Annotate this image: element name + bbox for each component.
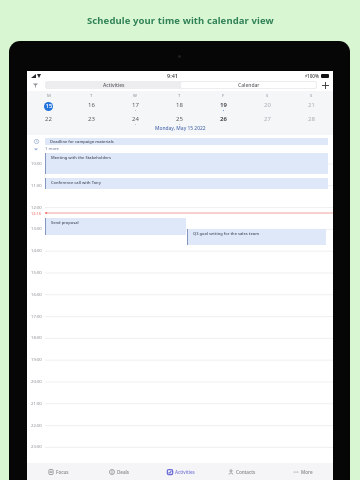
button[interactable]: 1 more (27, 146, 333, 152)
staticText: 13:00 (31, 226, 42, 232)
staticText: F (222, 93, 225, 98)
staticText: T (178, 93, 181, 98)
button[interactable]: 21 (289, 100, 333, 112)
staticText: 16 (88, 101, 95, 109)
button[interactable]: 22 (27, 114, 70, 126)
button[interactable]: Conference call with Tony (45, 178, 328, 189)
staticText: Schedule your time with calendar view (87, 14, 274, 27)
staticText: 15 (46, 102, 52, 109)
button[interactable]: 27 (245, 114, 289, 126)
button[interactable]: 23 (70, 114, 113, 126)
button[interactable]: 17 (113, 100, 157, 112)
button[interactable]: Contacts (211, 463, 272, 480)
staticText: Activities (175, 469, 195, 475)
staticText: 23 (88, 115, 95, 123)
staticText: S (310, 93, 313, 98)
button[interactable]: Add event (319, 80, 331, 90)
button[interactable]: Deals (89, 463, 150, 480)
staticText: 19 (220, 101, 227, 109)
button[interactable]: Activities (46, 82, 181, 88)
staticText: 25 (176, 115, 183, 123)
button[interactable]: Activities (150, 463, 211, 480)
staticText: Meeting with the Stakeholders (51, 155, 112, 160)
staticText: Deadline for campaign materials (50, 139, 114, 144)
staticText: Contacts (236, 469, 256, 475)
staticText: 21 (308, 101, 315, 109)
staticText: 17:00 (31, 314, 42, 320)
button[interactable]: Meeting with the Stakeholders (45, 153, 328, 174)
staticText: 20:00 (31, 379, 42, 385)
button[interactable]: 28 (289, 114, 333, 126)
staticText: More (301, 469, 313, 475)
staticText: 10:00 (31, 161, 42, 167)
button[interactable]: Deadline for campaign materials (27, 138, 333, 145)
staticText: W (133, 93, 137, 98)
staticText: 14:00 (31, 248, 42, 254)
staticText: 24 (132, 115, 139, 123)
button[interactable]: 26 (201, 114, 245, 126)
staticText: 22:00 (31, 423, 42, 429)
staticText: 18 (176, 101, 183, 109)
button[interactable]: 16 (70, 100, 113, 112)
staticText: 21:00 (31, 401, 42, 407)
staticText: S (266, 93, 269, 98)
button[interactable]: More (272, 463, 333, 480)
staticText: 11:00 (31, 183, 42, 189)
staticText: Calendar (238, 82, 260, 88)
staticText: 100% (307, 73, 319, 79)
staticText: Monday, May 15 2022 (155, 125, 206, 132)
staticText: 26 (220, 115, 227, 123)
staticText: Q3 goal setting for the sales team (193, 231, 259, 236)
button[interactable]: 25 (157, 114, 201, 126)
button[interactable]: 24 (113, 114, 157, 126)
staticText: 18:00 (31, 335, 42, 341)
button[interactable]: Q3 goal setting for the sales team (187, 229, 326, 245)
staticText: 27 (264, 115, 271, 123)
button[interactable]: 20 (245, 100, 289, 112)
staticText: 15:00 (31, 270, 42, 276)
staticText: 23:00 (31, 444, 42, 450)
button[interactable]: Focus (27, 463, 89, 480)
staticText: 20 (264, 101, 271, 109)
button[interactable]: Filter (29, 80, 41, 90)
staticText: 16:00 (31, 292, 42, 298)
staticText: 9:41 (167, 72, 178, 79)
staticText: 19:00 (31, 357, 42, 363)
staticText: Deals (117, 469, 130, 475)
staticText: 12:00 (31, 205, 42, 211)
staticText: Send proposal (51, 220, 79, 225)
button[interactable]: 15 (27, 100, 70, 112)
button[interactable]: Send proposal (45, 218, 186, 235)
staticText: T (90, 93, 93, 98)
staticText: 12:16 (31, 211, 41, 216)
staticText: Conference call with Tony (51, 180, 101, 185)
staticText: Activities (103, 82, 125, 88)
button[interactable]: 19 (201, 100, 245, 112)
staticText: 17 (132, 101, 139, 109)
staticText: 28 (308, 115, 315, 123)
staticText: M (47, 93, 51, 98)
button[interactable]: Calendar (181, 82, 316, 88)
staticText: 1 more (45, 146, 59, 152)
staticText: Focus (56, 469, 69, 475)
staticText: 22 (45, 115, 52, 123)
button[interactable]: 18 (157, 100, 201, 112)
